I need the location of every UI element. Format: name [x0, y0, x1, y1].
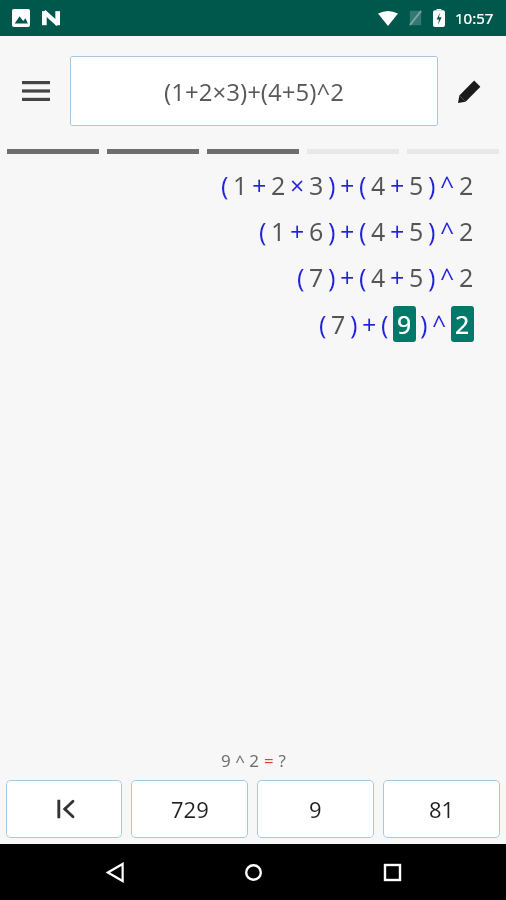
staticText: 729 — [171, 794, 209, 824]
staticText: ^ — [440, 260, 455, 294]
staticText: ( — [259, 214, 267, 248]
staticText: 7 — [331, 307, 346, 341]
staticText: 4 — [371, 214, 386, 248]
staticText: 2 — [459, 168, 474, 202]
staticText: ^ — [440, 214, 455, 248]
button[interactable]: (1+2×3)+(4+5)^2 — [70, 56, 438, 126]
staticText: + — [390, 260, 405, 294]
staticText: 4 — [371, 168, 386, 202]
button[interactable]: Edit — [444, 65, 496, 117]
staticText: ? — [274, 749, 286, 772]
button[interactable]: Menu — [10, 65, 62, 117]
staticText: + — [362, 307, 377, 341]
staticText: 9 — [309, 794, 322, 824]
staticText: ( — [297, 260, 305, 294]
staticText: + — [252, 168, 267, 202]
staticText: ( — [359, 168, 367, 202]
staticText: 7 — [309, 260, 324, 294]
staticText: ) — [428, 260, 436, 294]
staticText: ) — [328, 260, 336, 294]
staticText: 2 — [455, 307, 470, 341]
staticText: 1 — [271, 214, 286, 248]
button[interactable]: Back — [91, 848, 139, 896]
staticText: ) — [428, 168, 436, 202]
staticText: 6 — [309, 214, 324, 248]
button[interactable]: 81 — [383, 780, 500, 838]
staticText: + — [340, 214, 355, 248]
staticText: ) — [420, 307, 428, 341]
button[interactable]: Recent apps — [368, 848, 416, 896]
staticText: + — [390, 168, 405, 202]
staticText: + — [340, 168, 355, 202]
staticText: 2 — [271, 168, 286, 202]
button[interactable]: 9 — [257, 780, 374, 838]
button[interactable]: Home — [229, 848, 277, 896]
button[interactable]: Restart — [6, 780, 122, 838]
staticText: 3 — [309, 168, 324, 202]
staticText: + — [390, 214, 405, 248]
staticText: 10:57 — [455, 8, 494, 28]
staticText: + — [290, 214, 305, 248]
staticText: ( — [359, 260, 367, 294]
staticText: 5 — [409, 260, 424, 294]
staticText: 2 — [459, 260, 474, 294]
staticText: 1 — [233, 168, 248, 202]
staticText: + — [340, 260, 355, 294]
staticText: ) — [328, 168, 336, 202]
staticText: ( — [319, 307, 327, 341]
staticText: ( — [359, 214, 367, 248]
staticText: × — [290, 168, 305, 202]
staticText: ) — [350, 307, 358, 341]
staticText: = — [264, 749, 274, 772]
staticText: ( — [221, 168, 229, 202]
staticText: ) — [428, 214, 436, 248]
button[interactable]: 729 — [131, 780, 248, 838]
staticText: 5 — [409, 214, 424, 248]
staticText: (1+2×3)+(4+5)^2 — [164, 75, 344, 108]
staticText: 9 ^ 2 — [221, 749, 264, 772]
staticText: 81 — [429, 794, 455, 824]
staticText: 5 — [409, 168, 424, 202]
staticText: ^ — [440, 168, 455, 202]
staticText: ^ — [432, 307, 447, 341]
staticText: ) — [328, 214, 336, 248]
staticText: 2 — [459, 214, 474, 248]
staticText: ( — [381, 307, 389, 341]
staticText: 4 — [371, 260, 386, 294]
staticText: 9 — [397, 307, 412, 341]
